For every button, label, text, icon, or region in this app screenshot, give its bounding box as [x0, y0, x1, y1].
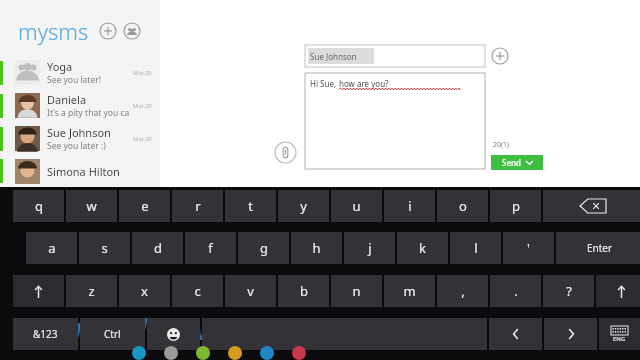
staticText: d — [154, 239, 162, 257]
staticText: Mar.20 — [133, 69, 152, 77]
staticText: y — [300, 197, 307, 215]
button[interactable]: Emoji — [147, 318, 200, 350]
button[interactable]: h — [291, 232, 342, 264]
button[interactable]: Space — [202, 318, 487, 350]
staticText: f — [208, 239, 213, 257]
button[interactable]: Yoga — [0, 56, 160, 89]
staticText: x — [141, 282, 148, 300]
button[interactable]: Enter — [556, 232, 640, 264]
staticText: k — [419, 239, 426, 257]
button[interactable]: q — [13, 190, 64, 222]
staticText: l — [474, 239, 478, 257]
staticText: Simona Hilton — [47, 164, 120, 179]
button[interactable]: Simona Hilton — [0, 155, 160, 187]
button[interactable]: Backspace — [543, 190, 640, 222]
button[interactable]: . — [490, 275, 541, 307]
button[interactable]: , — [437, 275, 488, 307]
button[interactable]: b — [278, 275, 329, 307]
staticText: h — [312, 239, 321, 257]
staticText: m — [403, 282, 416, 300]
staticText: e — [141, 197, 149, 215]
staticText: t — [248, 197, 253, 215]
staticText: , — [461, 282, 465, 300]
button[interactable]: t — [225, 190, 276, 222]
button[interactable]: w — [66, 190, 117, 222]
staticText: 20(1) — [493, 140, 510, 150]
staticText: u — [352, 197, 361, 215]
button[interactable]: c — [172, 275, 223, 307]
staticText: g — [260, 239, 268, 257]
button[interactable]: Add recipient — [491, 47, 509, 65]
button[interactable]: New message — [99, 22, 117, 40]
button[interactable]: Hi Sue, — [305, 73, 485, 169]
button[interactable]: e — [119, 190, 170, 222]
staticText: Enter — [587, 241, 613, 255]
button[interactable]: Send — [491, 155, 543, 170]
button[interactable]: Shift — [596, 275, 640, 307]
button[interactable]: l — [450, 232, 501, 264]
button[interactable]: &123 — [13, 318, 78, 350]
staticText: j — [368, 239, 372, 257]
staticText: Mar.20 — [133, 102, 152, 110]
button[interactable]: v — [225, 275, 276, 307]
button[interactable]: Sue Johnson — [305, 45, 485, 67]
button[interactable]: Ctrl — [80, 318, 145, 350]
staticText: mysms — [18, 16, 89, 46]
button[interactable]: ' — [503, 232, 554, 264]
button[interactable]: ? — [543, 275, 594, 307]
staticText: v — [247, 282, 254, 300]
staticText: ENG — [613, 335, 626, 343]
staticText: It's a pity that you ca — [47, 107, 130, 119]
button[interactable]: o — [437, 190, 488, 222]
staticText: . — [514, 282, 518, 300]
button[interactable]: Daniela — [0, 89, 160, 122]
button[interactable]: r — [172, 190, 223, 222]
button[interactable]: i — [384, 190, 435, 222]
staticText: n — [352, 282, 361, 300]
button[interactable]: u — [331, 190, 382, 222]
button[interactable]: m — [384, 275, 435, 307]
button[interactable]: z — [66, 275, 117, 307]
button[interactable]: Attach file — [274, 141, 297, 164]
button[interactable]: k — [397, 232, 448, 264]
staticText: .com.vn — [147, 320, 218, 346]
button[interactable]: x — [119, 275, 170, 307]
button[interactable]: n — [331, 275, 382, 307]
button[interactable]: s — [79, 232, 130, 264]
button[interactable]: d — [132, 232, 183, 264]
staticText: Yoga — [47, 59, 73, 74]
staticText: See you later :) — [47, 140, 106, 152]
staticText: q — [35, 197, 43, 215]
button[interactable]: g — [238, 232, 289, 264]
button[interactable]: Previous — [489, 318, 542, 350]
button[interactable]: Change language — [599, 318, 640, 350]
button[interactable]: Shift — [13, 275, 64, 307]
button[interactable]: Next — [544, 318, 597, 350]
staticText: Download — [18, 309, 147, 346]
staticText: Sue Johnson — [47, 125, 111, 140]
staticText: Hi Sue, — [310, 78, 339, 89]
staticText: Mar.20 — [133, 135, 152, 143]
staticText: how are you? — [339, 78, 389, 89]
button[interactable]: j — [344, 232, 395, 264]
staticText: a — [48, 239, 56, 257]
button[interactable]: y — [278, 190, 329, 222]
staticText: o — [459, 197, 467, 215]
button[interactable]: a — [26, 232, 77, 264]
button[interactable]: p — [490, 190, 541, 222]
staticText: See you later! — [47, 74, 102, 86]
staticText: &123 — [33, 327, 58, 341]
staticText: Sue Johnson — [308, 51, 357, 62]
button[interactable]: Group message — [123, 22, 141, 40]
staticText: ? — [566, 282, 572, 300]
staticText: i — [408, 197, 412, 215]
staticText: Send — [502, 157, 521, 168]
staticText: Daniela — [47, 92, 87, 107]
staticText: c — [194, 282, 201, 300]
staticText: ' — [527, 239, 530, 257]
staticText: p — [512, 197, 520, 215]
button[interactable]: Sue Johnson — [0, 122, 160, 155]
staticText: Ctrl — [104, 327, 121, 341]
staticText: r — [195, 197, 201, 215]
button[interactable]: f — [185, 232, 236, 264]
